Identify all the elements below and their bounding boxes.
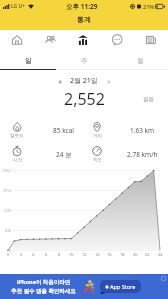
button[interactable]: 시간 xyxy=(0,142,84,166)
staticText: 6 xyxy=(45,252,48,257)
button[interactable]: News xyxy=(134,30,168,50)
button[interactable]: 칼로리 xyxy=(0,118,84,142)
button[interactable]: Ad info xyxy=(161,276,166,281)
staticText: 85 kcal xyxy=(53,126,75,135)
button[interactable]: Previous day xyxy=(54,76,65,87)
staticText: 10 xyxy=(69,252,74,257)
staticText: 월 xyxy=(137,57,144,65)
button[interactable]: Friends xyxy=(33,30,66,50)
button[interactable]: App Store xyxy=(100,280,141,293)
staticText: 8 xyxy=(58,252,61,257)
staticText: 1276 xyxy=(3,208,12,213)
button[interactable]: Statistics xyxy=(66,30,100,50)
staticText: LG U+ xyxy=(11,3,26,10)
button[interactable]: 거리 xyxy=(84,118,168,142)
staticText: 2552 xyxy=(3,168,12,173)
staticText: App Store xyxy=(110,283,136,290)
staticText: 24 xyxy=(158,252,163,257)
staticText: 칼로리 xyxy=(10,133,24,139)
staticText: 0 xyxy=(7,252,10,257)
button[interactable]: iPhone이 처음이라면 xyxy=(0,274,168,299)
staticText: 22 xyxy=(145,252,150,257)
button[interactable]: Next day xyxy=(103,76,114,87)
staticText: 12 xyxy=(82,252,87,257)
staticText: 14 xyxy=(95,252,100,257)
button[interactable]: 주 xyxy=(56,52,112,70)
button[interactable]: Chat xyxy=(100,30,134,50)
staticText: 0 xyxy=(9,248,12,253)
staticText: iPhone이 처음이라면 xyxy=(17,278,71,286)
staticText: 2,552 xyxy=(64,88,105,110)
staticText: 24 분 xyxy=(56,150,72,159)
staticText: 21% xyxy=(143,3,154,10)
staticText: 통계 xyxy=(77,15,91,24)
staticText: 시간 xyxy=(13,157,22,163)
staticText: 속도 xyxy=(93,157,102,163)
button[interactable]: 일 xyxy=(0,52,56,70)
button[interactable]: 월 xyxy=(112,52,168,70)
button[interactable]: Home xyxy=(0,30,33,50)
staticText: 일 xyxy=(25,57,32,65)
staticText: 1.63 km xyxy=(130,126,155,135)
staticText: 2월 21일 xyxy=(70,76,98,86)
staticText: 638 xyxy=(5,228,12,233)
staticText: 거리 xyxy=(93,133,102,139)
staticText: 20 xyxy=(133,252,138,257)
staticText: 2.78 km/h xyxy=(127,150,158,159)
staticText: 18 xyxy=(120,252,125,257)
staticText: 16 xyxy=(107,252,112,257)
staticText: 2 xyxy=(20,252,23,257)
staticText: 걸음 xyxy=(143,96,154,103)
staticText: 주 xyxy=(81,57,88,65)
staticText: 오후 11:29 xyxy=(66,2,98,11)
staticText: 1914 xyxy=(3,188,12,193)
button[interactable]: 속도 xyxy=(84,142,168,166)
staticText: 4 xyxy=(32,252,35,257)
staticText: 추천 필수 앱을 확인하세요 xyxy=(11,287,76,295)
